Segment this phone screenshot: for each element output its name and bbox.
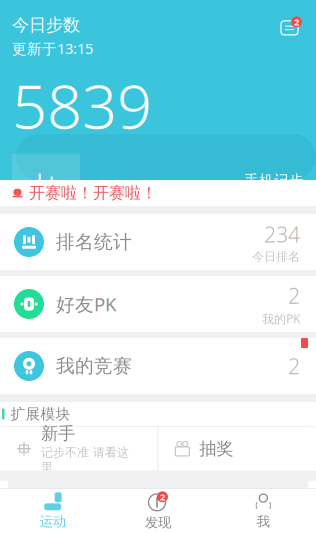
staticText: 我的竞赛 [56, 354, 132, 377]
button[interactable]: 好友PK [0, 276, 316, 332]
staticText: 我的PK [262, 311, 300, 327]
button[interactable]: Messages [278, 14, 304, 38]
button[interactable]: 运动 [0, 489, 105, 533]
staticText: 5839 [12, 64, 152, 146]
button[interactable]: 我的竞赛 [0, 338, 316, 394]
staticText: 开赛啦！开赛啦！ [29, 183, 157, 203]
staticText: 今日步数 [12, 14, 80, 36]
staticText: 更新于13:15 [12, 39, 93, 58]
staticText: 今日排名 [252, 249, 300, 264]
staticText: 抽奖 [199, 438, 233, 459]
staticText: 2 [288, 281, 300, 310]
staticText: 排名统计 [56, 230, 132, 253]
staticText: 2 [294, 16, 299, 28]
button[interactable]: 新手 [0, 427, 158, 471]
staticText: 手机记步 [244, 172, 304, 190]
staticText: 记步不准 请看这里 [41, 445, 129, 475]
button[interactable]: 开赛啦！开赛啦！ [0, 180, 316, 206]
button[interactable]: 排名统计 [0, 214, 316, 270]
staticText: 运动 [40, 513, 66, 530]
staticText: 2 [288, 352, 300, 380]
staticText: 发现 [145, 514, 171, 531]
button[interactable]: 我 [211, 489, 316, 533]
staticText: 2 [160, 491, 165, 503]
staticText: 新手 [41, 423, 75, 444]
staticText: 扩展模块 [10, 405, 70, 423]
staticText: 好友PK [56, 292, 117, 316]
button[interactable]: 抽奖 [158, 427, 316, 471]
staticText: 我 [257, 513, 270, 530]
button[interactable]: 2 [105, 489, 211, 533]
staticText: 234 [264, 220, 300, 248]
